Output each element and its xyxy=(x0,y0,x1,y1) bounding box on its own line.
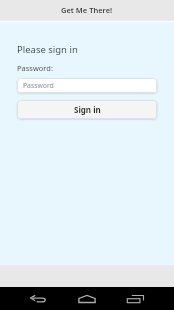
button[interactable]: Home xyxy=(62,287,111,310)
button[interactable]: Back xyxy=(14,287,62,310)
button[interactable]: Password xyxy=(17,78,157,93)
button[interactable]: Sign in xyxy=(17,100,157,119)
staticText: Password xyxy=(23,81,54,90)
staticText: Please sign in xyxy=(17,43,78,56)
button[interactable]: Recent apps xyxy=(111,287,160,310)
staticText: Get Me There! xyxy=(61,5,113,15)
staticText: Sign in xyxy=(74,104,101,115)
staticText: Password: xyxy=(17,63,53,73)
